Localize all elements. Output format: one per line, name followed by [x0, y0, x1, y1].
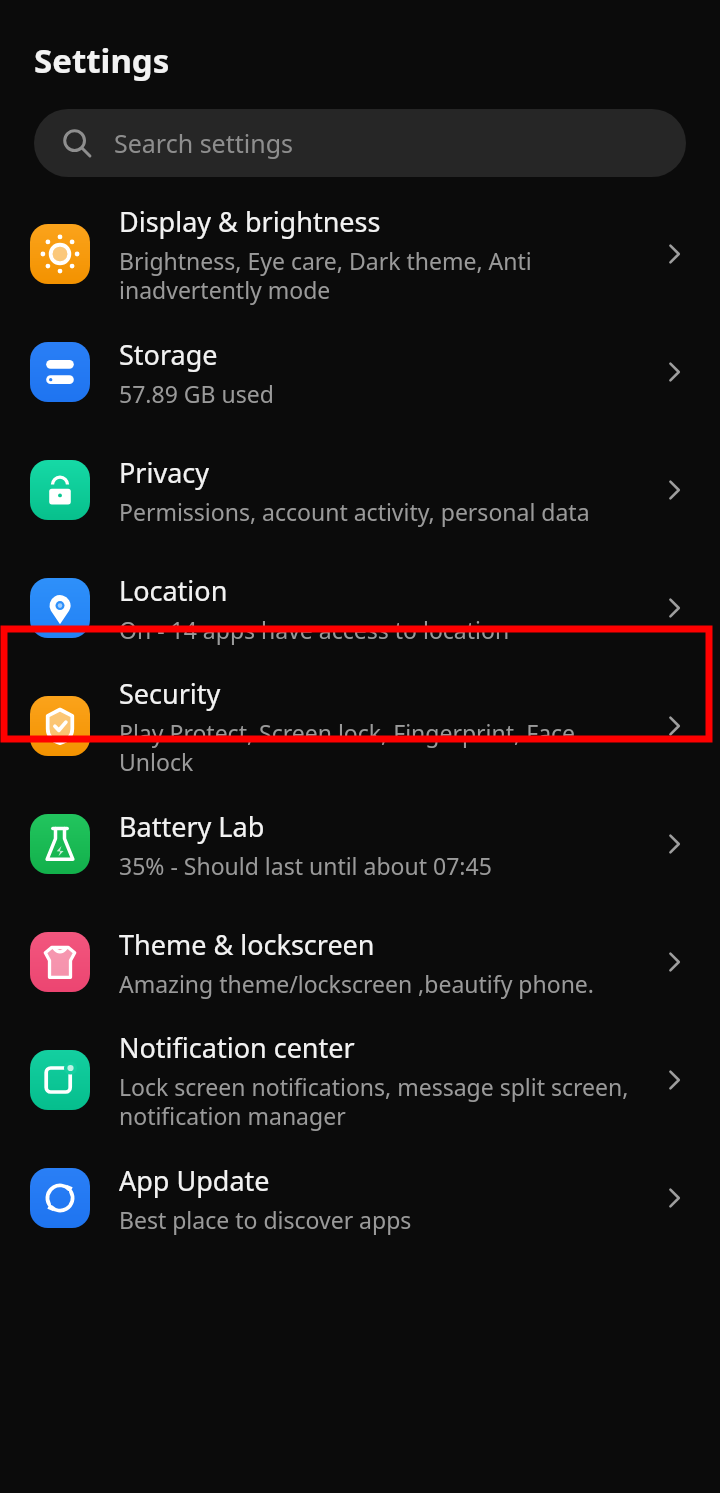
staticText: Storage: [119, 336, 218, 373]
staticText: Best place to discover apps: [119, 1204, 412, 1235]
staticText: Location: [119, 572, 228, 609]
other: App Update: [652, 1176, 696, 1220]
other: Storage: [652, 350, 696, 394]
button[interactable]: Battery Lab: [0, 785, 720, 903]
staticText: Privacy: [119, 454, 210, 491]
staticText: 57.89 GB used: [119, 378, 274, 409]
button[interactable]: Search settings: [34, 109, 686, 177]
other: Display & brightness: [652, 232, 696, 276]
staticText: Brightness, Eye care, Dark theme, Anti i…: [119, 245, 640, 306]
staticText: Permissions, account activity, personal …: [119, 496, 590, 527]
staticText: Notification center: [119, 1029, 355, 1066]
staticText: Battery Lab: [119, 808, 265, 845]
other: Location: [652, 586, 696, 630]
other: Battery Lab: [652, 822, 696, 866]
other: Notification center: [652, 1058, 696, 1102]
button[interactable]: Storage: [0, 313, 720, 431]
button[interactable]: Security: [0, 667, 720, 785]
other: Security: [652, 704, 696, 748]
button[interactable]: Theme & lockscreen: [0, 903, 720, 1021]
staticText: Display & brightness: [119, 203, 381, 240]
staticText: On - 14 apps have access to location: [119, 614, 510, 645]
staticText: App Update: [119, 1162, 270, 1199]
button[interactable]: Notification center: [0, 1021, 720, 1139]
button[interactable]: Location: [0, 549, 720, 667]
other: Privacy: [652, 468, 696, 512]
staticText: Play Protect, Screen lock, Fingerprint, …: [119, 717, 640, 778]
staticText: Search settings: [114, 126, 294, 160]
staticText: Amazing theme/lockscreen ,beautify phone…: [119, 968, 594, 999]
button[interactable]: Privacy: [0, 431, 720, 549]
staticText: Security: [119, 675, 221, 712]
other: Theme & lockscreen: [652, 940, 696, 984]
staticText: 35% - Should last until about 07:45: [119, 850, 492, 881]
staticText: Lock screen notifications, message split…: [119, 1071, 640, 1132]
staticText: Settings: [34, 38, 170, 83]
button[interactable]: Display & brightness: [0, 195, 720, 313]
staticText: Theme & lockscreen: [119, 926, 375, 963]
button[interactable]: App Update: [0, 1139, 720, 1257]
